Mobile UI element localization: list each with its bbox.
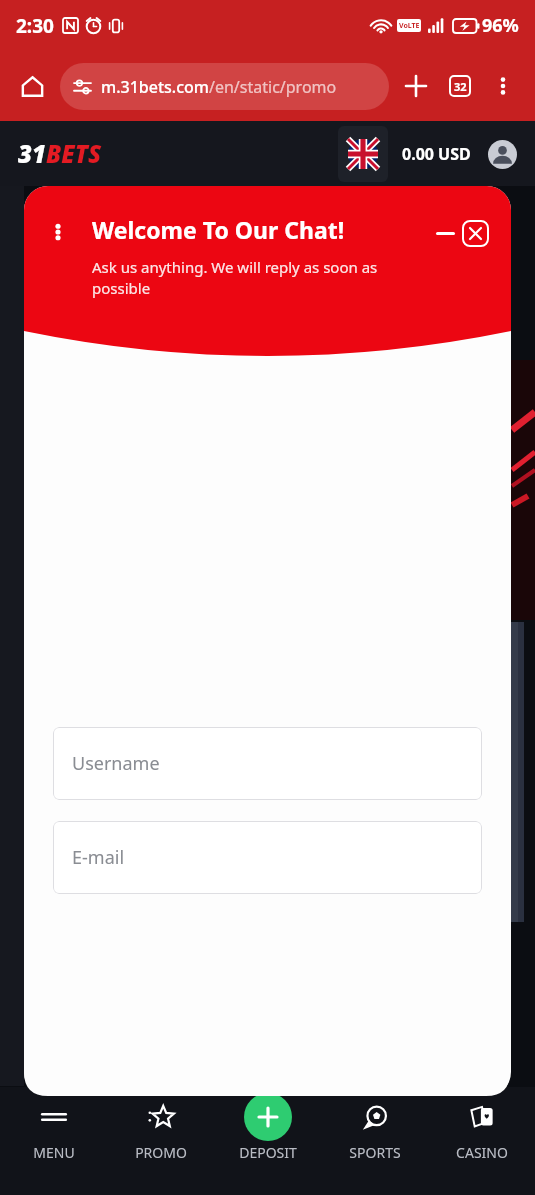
button[interactable]: Tabs: 32 <box>439 65 481 107</box>
button[interactable]: Username <box>53 727 482 800</box>
staticText: VoLTE <box>399 21 420 31</box>
button[interactable]: Home <box>12 66 52 106</box>
staticText: m.31bets.com <box>101 76 209 98</box>
staticText: 31 <box>18 137 46 170</box>
button[interactable]: Account <box>485 137 519 171</box>
button[interactable]: More options <box>483 66 523 106</box>
staticText: CASINO <box>456 1143 508 1162</box>
staticText: PROMO <box>135 1143 187 1162</box>
button[interactable]: CASINO <box>428 1087 535 1195</box>
staticText: Username <box>72 751 160 776</box>
button[interactable]: m.31bets.com <box>60 63 389 110</box>
staticText: SPORTS <box>349 1143 401 1162</box>
staticText: DEPOSIT <box>239 1143 297 1162</box>
button[interactable]: Minimize chat <box>428 216 462 250</box>
staticText: /en/static/promo <box>209 76 337 98</box>
button[interactable]: PROMO <box>107 1087 214 1195</box>
staticText: BETS <box>46 137 102 170</box>
button[interactable]: Close chat <box>458 216 492 250</box>
staticText: Welcome To Our Chat! <box>92 214 345 245</box>
button[interactable]: E-mail <box>53 821 482 894</box>
button[interactable]: New tab <box>395 65 437 107</box>
button[interactable]: SPORTS <box>321 1087 428 1195</box>
button[interactable]: 0.00 USD <box>402 143 471 165</box>
staticText: 32 <box>454 79 467 94</box>
staticText: E-mail <box>72 845 125 870</box>
button[interactable]: Language: English <box>338 126 388 182</box>
button[interactable]: MENU <box>0 1087 107 1195</box>
staticText: 96% <box>482 13 519 38</box>
button[interactable]: Chat menu <box>44 218 72 246</box>
staticText: Ask us anything. We will reply as soon a… <box>92 257 439 299</box>
staticText: 2:30 <box>16 13 54 39</box>
button[interactable]: DEPOSIT <box>214 1087 321 1195</box>
button[interactable]: 31 <box>18 137 102 170</box>
staticText: MENU <box>33 1143 75 1162</box>
